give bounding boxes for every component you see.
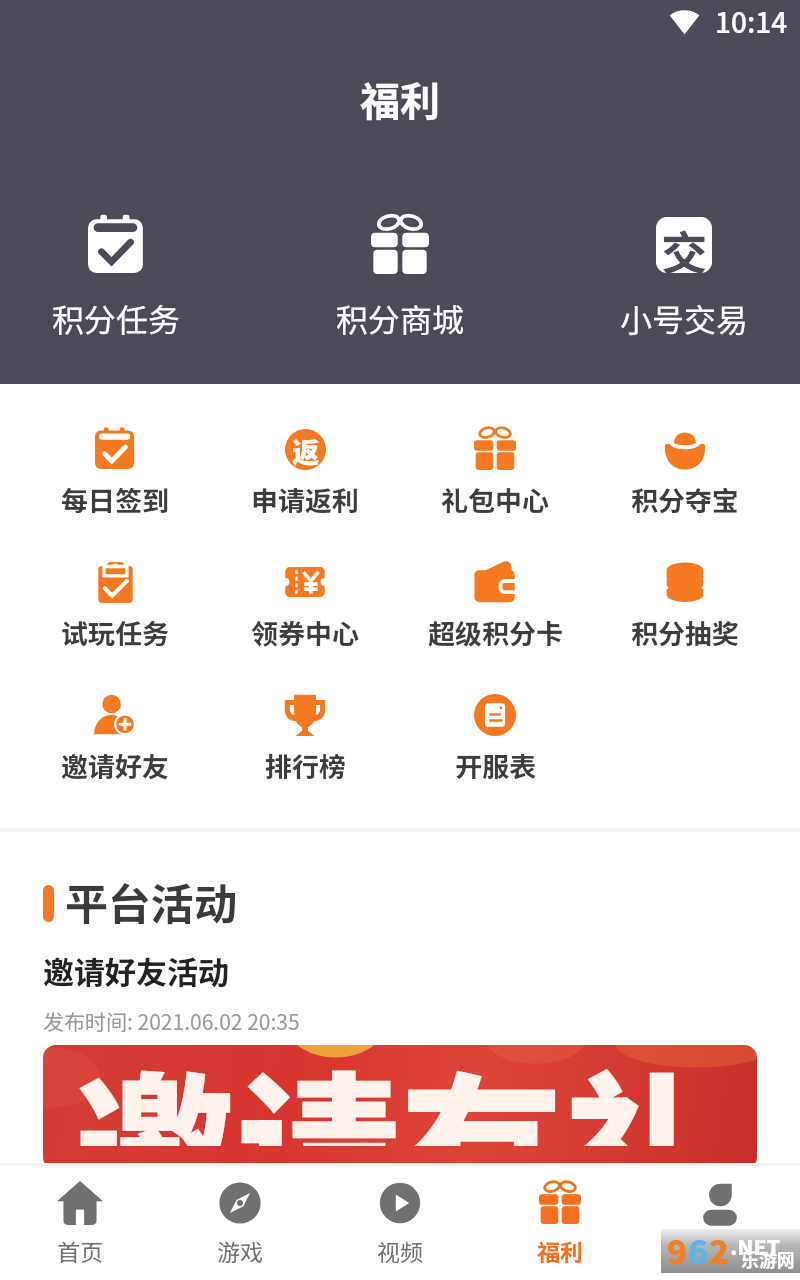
staticText: 邀请好友活动 bbox=[43, 948, 229, 993]
button[interactable]: 每日签到 bbox=[20, 427, 210, 519]
staticText: 积分任务 bbox=[52, 295, 181, 341]
staticText: 排行榜 bbox=[265, 746, 346, 785]
button[interactable]: 游戏 bbox=[160, 1180, 320, 1267]
staticText: 返 bbox=[292, 431, 319, 470]
staticText: 游戏 bbox=[217, 1234, 263, 1267]
staticText: 2 bbox=[709, 1226, 730, 1270]
button[interactable]: 视频 bbox=[320, 1180, 480, 1267]
staticText: 6 bbox=[688, 1226, 709, 1270]
staticText: 首页 bbox=[57, 1234, 103, 1267]
button[interactable]: 试玩任务 bbox=[20, 560, 210, 652]
button[interactable]: 首页 bbox=[0, 1180, 160, 1267]
button[interactable]: 积分商城 bbox=[290, 216, 510, 341]
button[interactable]: 交 bbox=[574, 216, 794, 341]
staticText: 开服表 bbox=[455, 746, 536, 785]
button[interactable]: 积分抽奖 bbox=[590, 560, 780, 652]
staticText: 申请返利 bbox=[251, 480, 359, 519]
staticText: 10:14 bbox=[715, 1, 788, 42]
staticText: 福利 bbox=[360, 70, 440, 128]
button[interactable]: 排行榜 bbox=[210, 693, 400, 785]
button[interactable]: 超级积分卡 bbox=[400, 560, 590, 652]
staticText: 福利 bbox=[537, 1234, 583, 1267]
staticText: .NET bbox=[730, 1231, 781, 1261]
button[interactable]: 积分任务 bbox=[6, 216, 226, 341]
staticText: 积分抽奖 bbox=[631, 613, 739, 652]
staticText: 试玩任务 bbox=[61, 613, 169, 652]
staticText: 邀请好友 bbox=[61, 746, 169, 785]
staticText: 积分商城 bbox=[336, 295, 465, 341]
staticText: 超级积分卡 bbox=[428, 613, 563, 652]
button[interactable]: 领券中心 bbox=[210, 560, 400, 652]
staticText: 每日签到 bbox=[61, 480, 169, 519]
staticText: 视频 bbox=[377, 1234, 423, 1267]
button[interactable]: 返 bbox=[210, 427, 400, 519]
staticText: 积分夺宝 bbox=[631, 480, 739, 519]
button[interactable]: 邀请好友 bbox=[20, 693, 210, 785]
staticText: 平台活动 bbox=[65, 870, 237, 932]
staticText: 乐游网 bbox=[741, 1246, 795, 1272]
button[interactable]: 我的 bbox=[640, 1180, 800, 1267]
staticText: 领券中心 bbox=[251, 613, 359, 652]
button[interactable]: 积分夺宝 bbox=[590, 427, 780, 519]
staticText: 礼包中心 bbox=[441, 480, 549, 519]
button[interactable]: 福利 bbox=[480, 1180, 640, 1267]
staticText: 邀请有礼 bbox=[74, 1045, 727, 1146]
staticText: 发布时间: 2021.06.02 20:35 bbox=[43, 1006, 300, 1036]
staticText: 9 bbox=[667, 1226, 688, 1270]
button[interactable]: 开服表 bbox=[400, 693, 590, 785]
staticText: 我的 bbox=[697, 1234, 743, 1267]
staticText: 交 bbox=[661, 217, 707, 273]
button[interactable]: 邀请好友活动 bbox=[43, 948, 757, 1170]
staticText: 小号交易 bbox=[620, 295, 749, 341]
button[interactable]: 礼包中心 bbox=[400, 427, 590, 519]
